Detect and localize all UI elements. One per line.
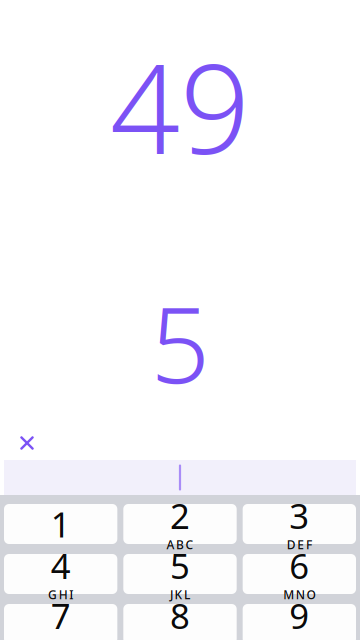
button[interactable]: 8 <box>123 604 237 640</box>
button[interactable]: 4 <box>4 554 117 594</box>
staticText: 3 <box>289 492 309 538</box>
button[interactable]: 2 <box>123 504 237 544</box>
button[interactable]: 5 <box>123 554 237 594</box>
button[interactable]: 6 <box>243 554 356 594</box>
staticText: 49 <box>110 25 250 188</box>
staticText: JKL <box>170 587 190 602</box>
button[interactable]: 3 <box>243 504 356 544</box>
staticText: 5 <box>150 274 209 412</box>
staticText: ABC <box>166 537 194 552</box>
button[interactable]: 7 <box>4 604 117 640</box>
staticText: 9 <box>289 592 309 638</box>
staticText: MNO <box>283 587 315 602</box>
staticText: 4 <box>51 542 71 588</box>
staticText: 2 <box>170 492 190 538</box>
staticText: 5 <box>170 542 190 588</box>
button[interactable]: 9 <box>243 604 356 640</box>
staticText: 6 <box>289 542 309 588</box>
button[interactable]: 1 <box>4 504 117 544</box>
staticText: 7 <box>51 592 71 638</box>
button[interactable]: Clear <box>10 426 44 460</box>
staticText: GHI <box>48 587 73 602</box>
staticText: 1 <box>51 501 71 547</box>
staticText: DEF <box>287 537 312 552</box>
staticText: 8 <box>170 592 190 638</box>
